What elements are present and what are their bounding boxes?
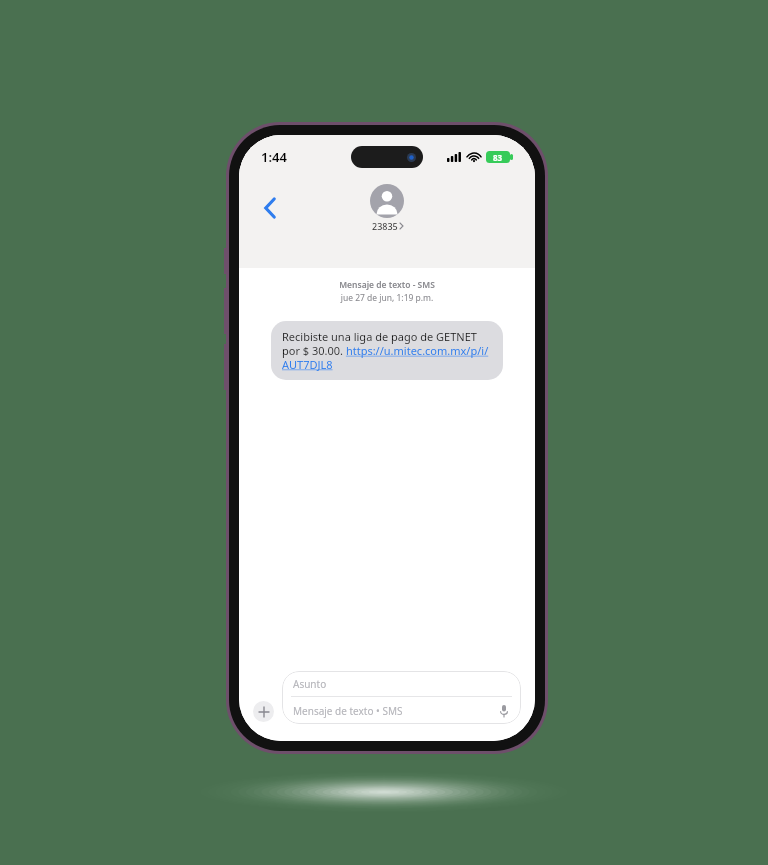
staticText: 1:44 bbox=[261, 148, 287, 166]
button[interactable]: Recibiste una liga de pago de GETNET por… bbox=[271, 321, 503, 380]
button[interactable]: Asunto bbox=[282, 671, 521, 724]
button[interactable]: Back bbox=[253, 191, 287, 225]
staticText: Mensaje de texto • SMS bbox=[293, 704, 403, 718]
staticText: jue 27 de jun, 1:19 p.m. bbox=[239, 292, 535, 304]
button[interactable]: 23835 bbox=[370, 184, 404, 232]
staticText: Recibiste una liga de pago de GETNET por… bbox=[282, 329, 492, 372]
staticText: Asunto bbox=[293, 677, 327, 691]
button[interactable]: Add attachment bbox=[253, 701, 274, 722]
staticText: 83 bbox=[493, 152, 503, 163]
staticText: Mensaje de texto - SMS bbox=[239, 279, 535, 291]
staticText: 23835 bbox=[372, 220, 398, 232]
button[interactable]: Dictate bbox=[496, 703, 512, 719]
